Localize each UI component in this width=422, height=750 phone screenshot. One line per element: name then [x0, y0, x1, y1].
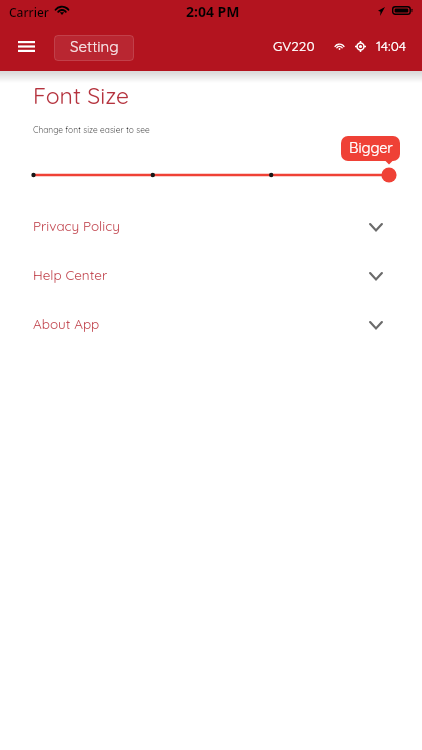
button[interactable]: Location: [352, 37, 368, 59]
staticText: Bigger: [349, 139, 393, 157]
staticText: Setting: [70, 37, 119, 56]
button[interactable]: Privacy Policy: [33, 201, 383, 250]
button[interactable]: Help Center: [33, 250, 383, 299]
staticText: GV220: [273, 37, 315, 54]
staticText: Change font size easier to see: [33, 125, 150, 135]
staticText: Font Size: [33, 81, 129, 110]
staticText: About App: [33, 315, 100, 332]
button[interactable]: Setting: [54, 35, 134, 61]
staticText: 14:04: [376, 37, 407, 54]
button[interactable]: About App: [33, 299, 383, 348]
staticText: Help Center: [33, 266, 108, 283]
staticText: Privacy Policy: [33, 217, 120, 234]
button[interactable]: Wi-Fi: [331, 37, 347, 59]
staticText: 2:04 PM: [186, 2, 240, 21]
button[interactable]: Menu: [14, 32, 38, 60]
staticText: Carrier: [9, 4, 49, 20]
